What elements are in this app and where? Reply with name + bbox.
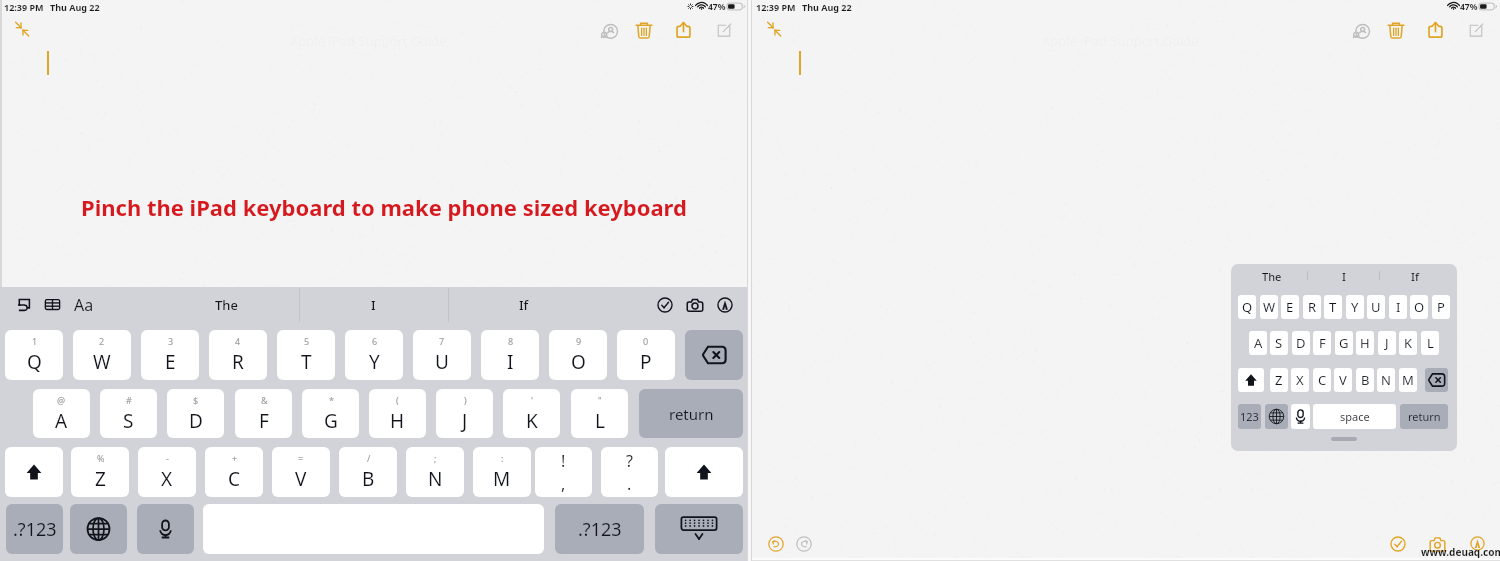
button[interactable]: F bbox=[1313, 331, 1331, 355]
button[interactable]: Delete bbox=[1387, 21, 1405, 39]
button[interactable]: * bbox=[302, 389, 359, 438]
button[interactable]: Share bbox=[1427, 21, 1444, 38]
button[interactable]: 0 bbox=[617, 330, 675, 380]
button[interactable]: return bbox=[639, 389, 743, 438]
button[interactable]: Compose bbox=[1467, 21, 1485, 39]
button[interactable] bbox=[1238, 368, 1264, 392]
button[interactable]: H bbox=[1356, 331, 1374, 355]
button[interactable]: & bbox=[235, 389, 292, 438]
button[interactable]: 8 bbox=[481, 330, 539, 380]
button[interactable]: Markup bbox=[1470, 536, 1485, 551]
button[interactable] bbox=[685, 330, 743, 380]
button[interactable] bbox=[1425, 368, 1448, 392]
button[interactable]: ' bbox=[503, 389, 560, 438]
button[interactable]: 4 bbox=[209, 330, 267, 380]
button[interactable]: Z bbox=[1270, 368, 1288, 392]
button[interactable]: Camera bbox=[1429, 535, 1446, 552]
button[interactable]: Format bbox=[73, 294, 95, 315]
button[interactable]: W bbox=[1260, 295, 1278, 319]
button[interactable] bbox=[5, 447, 63, 497]
button[interactable]: O bbox=[1410, 295, 1428, 319]
staticText: 8 bbox=[508, 335, 514, 347]
button[interactable]: ! bbox=[535, 447, 592, 497]
button[interactable]: K bbox=[1399, 331, 1417, 355]
button[interactable]: : bbox=[473, 447, 531, 497]
button[interactable]: M bbox=[1399, 368, 1417, 392]
button[interactable]: $ bbox=[167, 389, 224, 438]
staticText: 5 bbox=[304, 335, 310, 347]
button[interactable]: X bbox=[1291, 368, 1309, 392]
button[interactable]: Share bbox=[675, 21, 692, 38]
button[interactable]: B bbox=[1356, 368, 1374, 392]
button[interactable]: ( bbox=[369, 389, 426, 438]
button[interactable]: ; bbox=[406, 447, 464, 497]
staticText: E bbox=[165, 349, 176, 375]
button[interactable]: Undo bbox=[768, 536, 784, 552]
button[interactable]: Delete bbox=[635, 21, 653, 39]
button[interactable] bbox=[1265, 404, 1288, 429]
button[interactable]: / bbox=[339, 447, 397, 497]
button[interactable]: Table bbox=[42, 294, 63, 315]
button[interactable] bbox=[655, 504, 743, 554]
button[interactable]: Checklist bbox=[657, 297, 673, 313]
button[interactable]: N bbox=[1377, 368, 1395, 392]
button[interactable]: U bbox=[1367, 295, 1385, 319]
staticText: L bbox=[1427, 334, 1434, 352]
staticText: return bbox=[1408, 409, 1441, 424]
button[interactable]: Collapse bbox=[766, 21, 782, 37]
button[interactable]: # bbox=[100, 389, 157, 438]
button[interactable]: Markup bbox=[717, 297, 733, 313]
button[interactable]: I bbox=[1389, 295, 1407, 319]
button[interactable]: ) bbox=[436, 389, 493, 438]
button[interactable]: 6 bbox=[345, 330, 403, 380]
button[interactable]: Collapse bbox=[14, 21, 30, 37]
button[interactable]: 7 bbox=[413, 330, 471, 380]
button[interactable]: 123 bbox=[1238, 404, 1261, 429]
button[interactable] bbox=[137, 504, 194, 554]
button[interactable]: return bbox=[1400, 404, 1448, 429]
button[interactable]: = bbox=[272, 447, 330, 497]
button[interactable]: J bbox=[1378, 331, 1396, 355]
button[interactable]: 9 bbox=[549, 330, 607, 380]
button[interactable]: G bbox=[1335, 331, 1353, 355]
button[interactable]: Collaborate bbox=[598, 21, 621, 44]
button[interactable]: S bbox=[1270, 331, 1288, 355]
button[interactable]: Compose bbox=[715, 21, 733, 39]
button[interactable]: @ bbox=[33, 389, 90, 438]
staticText: J bbox=[462, 408, 468, 434]
button[interactable]: " bbox=[571, 389, 628, 438]
button[interactable]: 1 bbox=[5, 330, 63, 380]
button[interactable]: A bbox=[1249, 331, 1267, 355]
button[interactable]: Checklist bbox=[1390, 536, 1406, 552]
button[interactable]: L bbox=[1421, 331, 1439, 355]
button[interactable]: R bbox=[1303, 295, 1321, 319]
button[interactable]: V bbox=[1334, 368, 1352, 392]
button[interactable]: 2 bbox=[73, 330, 131, 380]
button[interactable]: Q bbox=[1238, 295, 1256, 319]
staticText: 0 bbox=[643, 335, 649, 347]
button[interactable]: C bbox=[1313, 368, 1331, 392]
button[interactable]: P bbox=[1432, 295, 1450, 319]
button[interactable]: T bbox=[1324, 295, 1342, 319]
button[interactable]: - bbox=[138, 447, 196, 497]
button[interactable]: D bbox=[1292, 331, 1310, 355]
button[interactable]: Camera bbox=[686, 297, 704, 312]
button[interactable]: .?123 bbox=[555, 504, 644, 554]
staticText: : bbox=[501, 452, 504, 464]
button[interactable]: Note actions bbox=[13, 294, 34, 315]
button[interactable] bbox=[665, 447, 743, 497]
button[interactable]: 5 bbox=[277, 330, 335, 380]
button[interactable]: E bbox=[1281, 295, 1299, 319]
button[interactable]: .?123 bbox=[6, 504, 63, 554]
button[interactable] bbox=[1291, 404, 1310, 429]
button[interactable]: Collaborate bbox=[1350, 21, 1373, 44]
button[interactable]: % bbox=[71, 447, 129, 497]
button[interactable]: Redo bbox=[796, 536, 812, 552]
button[interactable]: + bbox=[205, 447, 263, 497]
button[interactable]: 3 bbox=[141, 330, 199, 380]
button[interactable]: space bbox=[1313, 404, 1396, 429]
button[interactable]: Y bbox=[1346, 295, 1364, 319]
button[interactable] bbox=[70, 504, 127, 554]
button[interactable]: ? bbox=[601, 447, 658, 497]
